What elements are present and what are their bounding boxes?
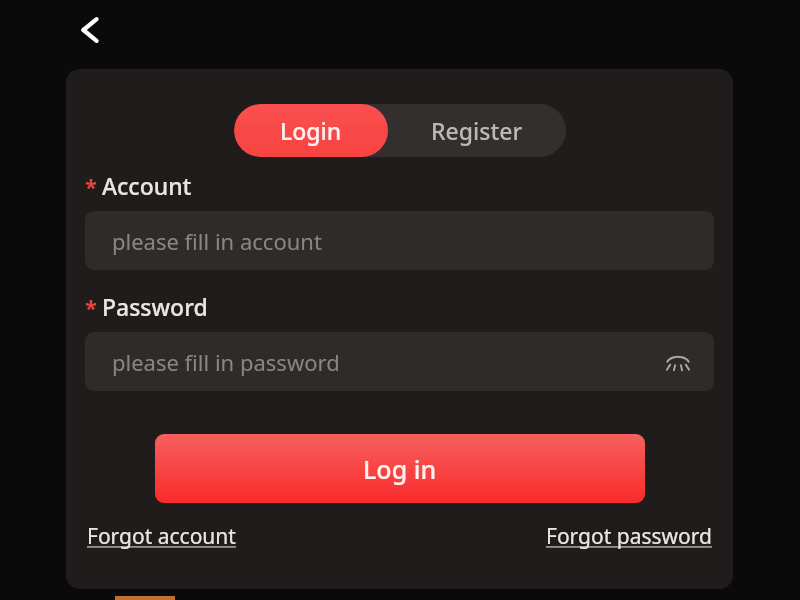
button[interactable]: Forgot account bbox=[85, 518, 238, 555]
staticText: Password bbox=[102, 291, 208, 322]
staticText: please fill in password bbox=[112, 347, 340, 377]
staticText: Forgot password bbox=[546, 522, 712, 551]
staticText: please fill in account bbox=[112, 226, 322, 256]
staticText: Register bbox=[431, 115, 523, 146]
button[interactable]: please fill in account bbox=[85, 211, 714, 270]
button[interactable]: Show password bbox=[658, 342, 698, 382]
button[interactable]: Forgot password bbox=[544, 518, 714, 555]
staticText: * bbox=[85, 171, 97, 201]
staticText: Log in bbox=[363, 452, 437, 486]
button[interactable]: Back bbox=[62, 2, 118, 58]
button[interactable]: please fill in password bbox=[85, 332, 714, 391]
button[interactable]: Register bbox=[388, 104, 566, 157]
staticText: Account bbox=[102, 170, 192, 201]
button[interactable]: Log in bbox=[155, 434, 645, 503]
button[interactable]: Login bbox=[234, 104, 388, 157]
staticText: * bbox=[85, 292, 97, 322]
staticText: Login bbox=[280, 115, 342, 146]
staticText: Forgot account bbox=[87, 522, 236, 551]
